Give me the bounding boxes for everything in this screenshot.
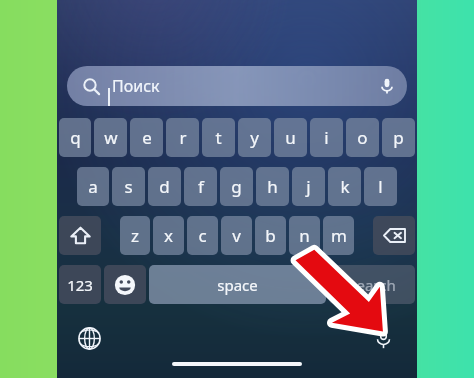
button[interactable]: g [220,167,253,206]
button[interactable]: a [77,167,109,206]
button[interactable]: y [238,118,271,157]
staticText: z [131,224,139,247]
other: Backspace [382,223,407,248]
button[interactable]: search [329,265,415,304]
staticText: r [179,126,187,149]
other: Emoji [114,274,136,296]
staticText: n [299,224,310,247]
staticText: Поиск [112,75,160,97]
staticText: p [393,126,404,149]
button[interactable]: b [255,216,286,255]
button[interactable]: v [221,216,252,255]
button[interactable]: f [184,167,217,206]
button[interactable]: w [94,118,127,157]
button[interactable]: Emoji [104,265,146,304]
staticText: search [349,275,396,295]
button[interactable]: s [112,167,145,206]
button[interactable]: z [120,216,150,255]
button[interactable]: Backspace [373,216,415,255]
staticText: w [104,126,118,149]
staticText: f [198,175,204,198]
button[interactable]: k [328,167,361,206]
button[interactable]: i [310,118,343,157]
staticText: s [124,175,133,198]
staticText: v [232,224,241,247]
staticText: g [231,175,242,198]
staticText: h [267,175,278,198]
button[interactable]: h [256,167,289,206]
button[interactable]: e [130,118,163,157]
staticText: t [215,126,222,149]
staticText: m [331,224,347,247]
staticText: space [217,275,258,295]
staticText: a [88,175,98,198]
button[interactable]: Dictation [367,322,399,354]
button[interactable]: space [149,265,326,304]
staticText: j [306,175,311,198]
button[interactable]: c [187,216,218,255]
button[interactable]: q [59,118,91,157]
button[interactable]: 123 [59,265,101,304]
button[interactable]: x [153,216,184,255]
button[interactable]: Switch keyboard [73,322,105,354]
button[interactable]: Поиск [67,66,407,106]
button[interactable]: p [382,118,415,157]
staticText: q [70,126,81,149]
staticText: o [357,126,368,149]
button[interactable]: Shift [59,216,101,255]
other: Shift [69,224,92,247]
button[interactable]: j [292,167,325,206]
button[interactable]: Voice search [377,76,397,96]
staticText: 123 [67,275,93,295]
staticText: i [324,126,329,149]
staticText: d [159,175,170,198]
button[interactable]: o [346,118,379,157]
button[interactable]: n [289,216,320,255]
button[interactable]: d [148,167,181,206]
button[interactable]: r [166,118,199,157]
staticText: e [142,126,152,149]
staticText: x [164,224,173,247]
staticText: l [378,175,383,198]
button[interactable]: m [323,216,354,255]
button[interactable]: u [274,118,307,157]
staticText: u [285,126,296,149]
button[interactable]: l [364,167,397,206]
button[interactable]: t [202,118,235,157]
staticText: k [340,175,350,198]
staticText: c [198,224,207,247]
staticText: y [250,126,259,149]
staticText: b [265,224,276,247]
